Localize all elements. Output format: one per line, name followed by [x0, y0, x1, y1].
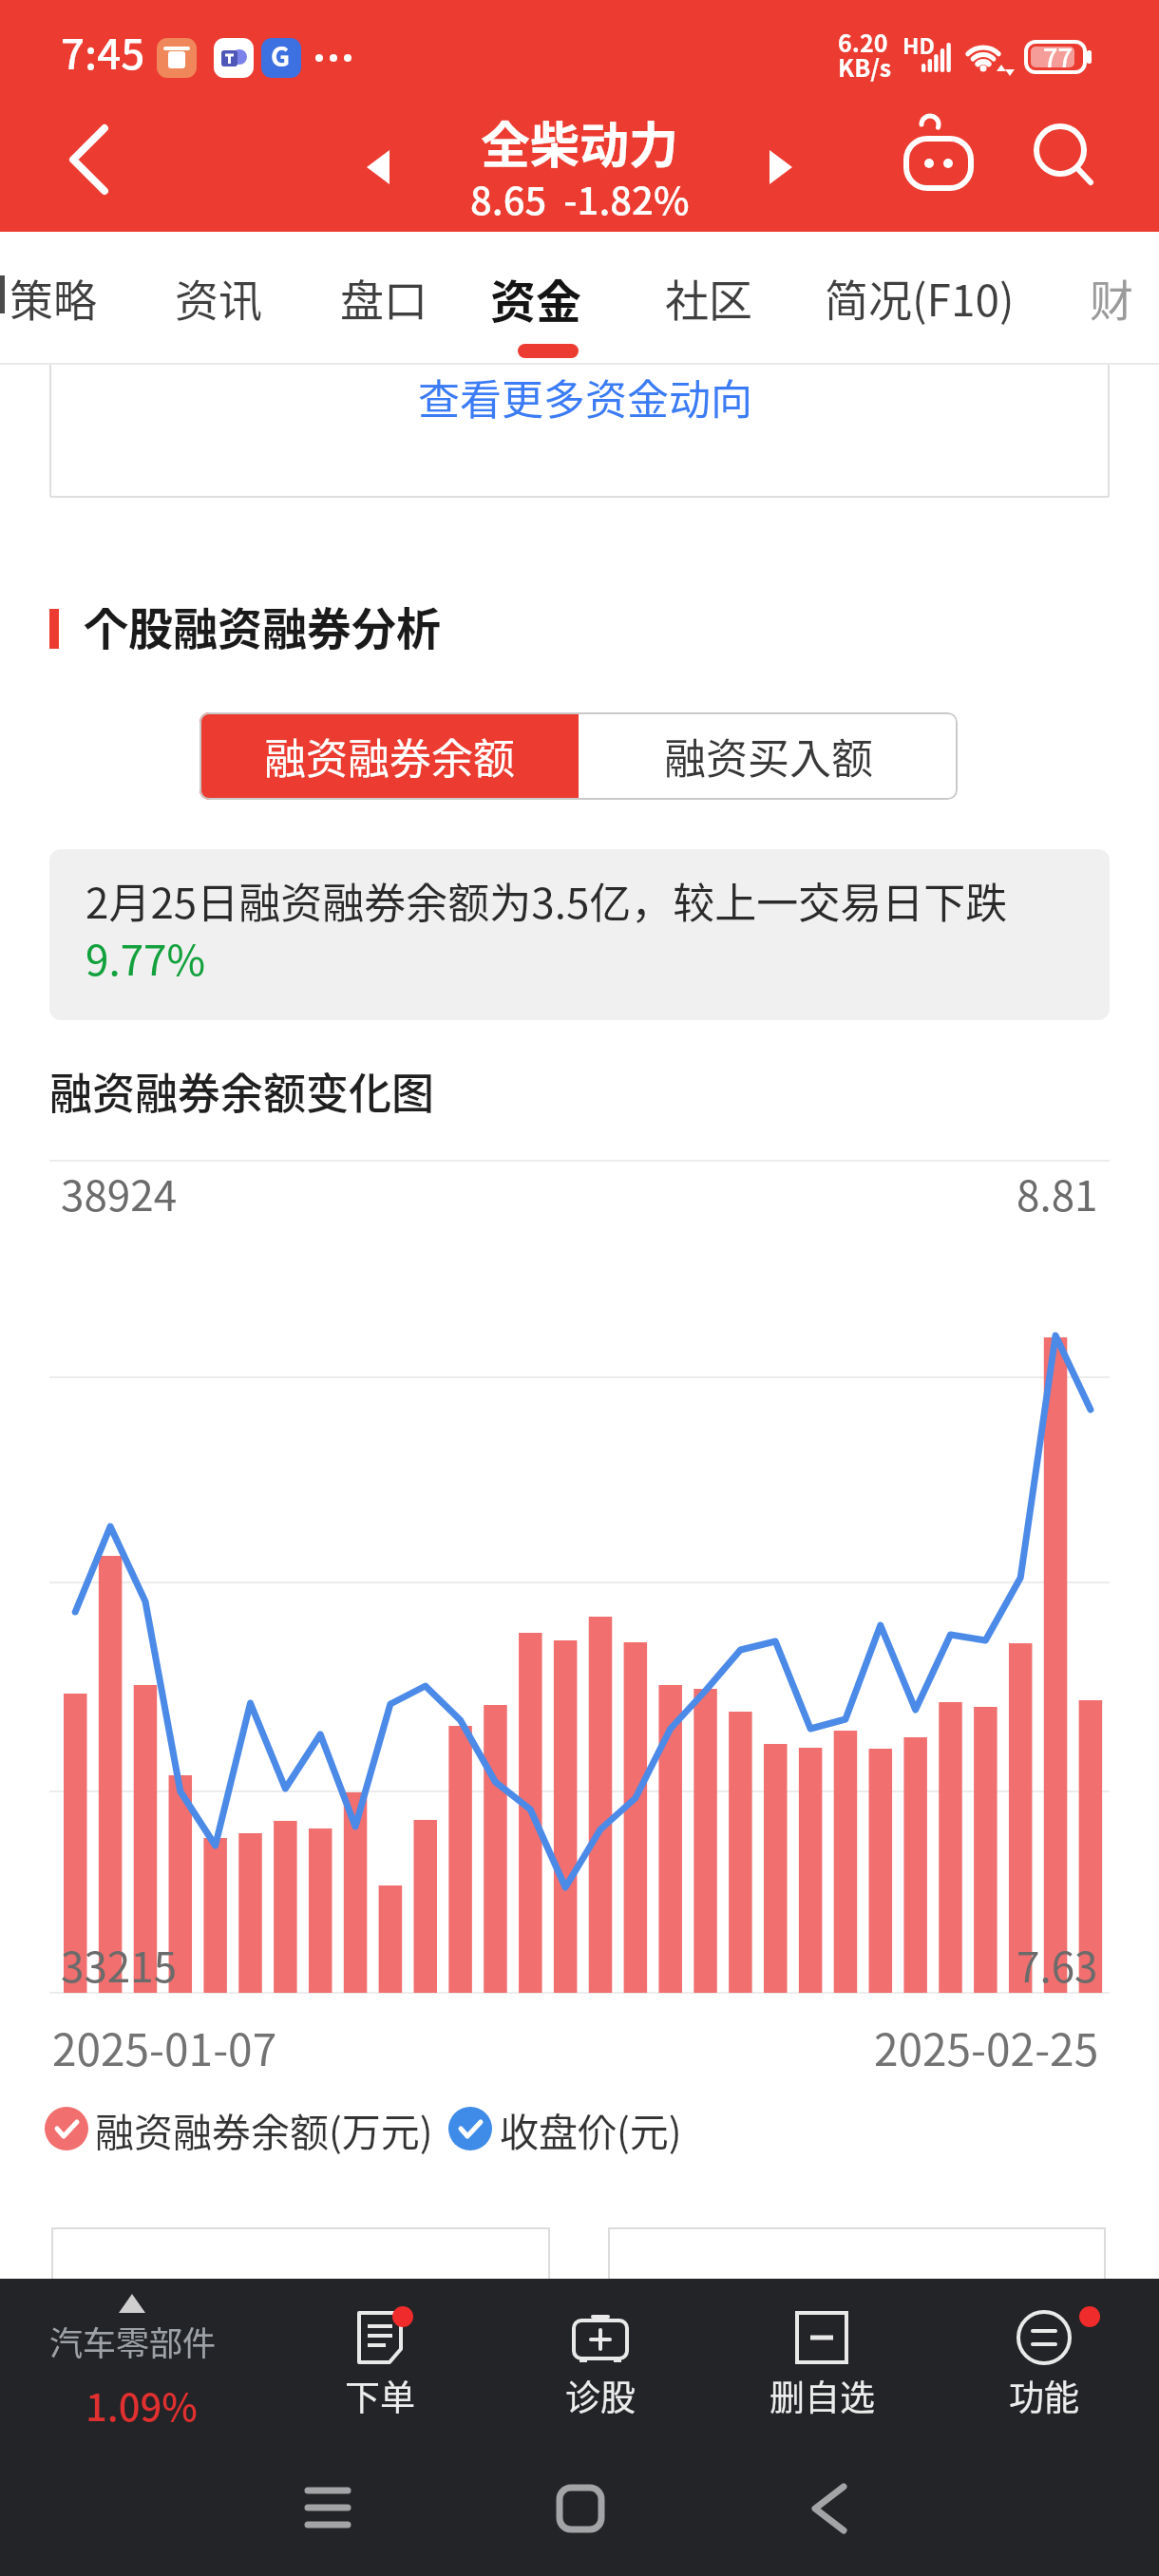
- staticText: 汽车零部件: [49, 2317, 217, 2365]
- button[interactable]: 删自选: [712, 2279, 932, 2453]
- button[interactable]: 资金: [484, 266, 614, 332]
- staticText: 全柴动力: [481, 106, 679, 178]
- staticText: 8.65 -1.82%: [470, 171, 690, 226]
- staticText: 查看更多资金动向: [418, 367, 752, 424]
- button[interactable]: 汽车零部件: [28, 2279, 237, 2453]
- staticText: 7.63: [1016, 1934, 1098, 1995]
- staticText: 策略: [9, 266, 97, 330]
- staticText: KB/s: [838, 49, 892, 84]
- staticText: 简况(F10): [825, 266, 1015, 330]
- staticText: 2月25日融资融券余额为3.5亿，较上一交易日下跌: [85, 870, 1008, 931]
- staticText: 盘口: [340, 266, 427, 330]
- button[interactable]: [38, 101, 142, 222]
- button[interactable]: [893, 114, 984, 209]
- button[interactable]: 融资买入额: [579, 712, 958, 800]
- button[interactable]: [1022, 114, 1117, 209]
- staticText: 收盘价(元): [500, 2101, 682, 2157]
- staticText: 资金: [490, 265, 582, 331]
- staticText: 1.09%: [85, 2377, 198, 2433]
- button[interactable]: 简况(F10): [821, 266, 1030, 332]
- button[interactable]: 社区: [661, 266, 756, 332]
- button[interactable]: [533, 2461, 628, 2556]
- staticText: 下单: [345, 2370, 415, 2421]
- button[interactable]: 功能: [934, 2279, 1154, 2453]
- staticText: 33215: [61, 1934, 178, 1995]
- button[interactable]: 查看更多资金动向: [408, 367, 750, 424]
- staticText: 社区: [665, 266, 752, 330]
- staticText: 诊股: [565, 2370, 636, 2421]
- button[interactable]: 盘口: [336, 266, 431, 332]
- button[interactable]: 下单: [270, 2279, 490, 2453]
- button[interactable]: [783, 2461, 878, 2556]
- staticText: 7:45: [61, 21, 145, 82]
- staticText: 融资融券余额(万元): [95, 2101, 433, 2157]
- staticText: 个股融资融券分析: [84, 593, 441, 657]
- button[interactable]: [279, 2461, 374, 2556]
- button[interactable]: 诊股: [490, 2279, 711, 2453]
- staticText: 38924: [61, 1163, 178, 1223]
- staticText: 融资融券余额: [264, 726, 515, 786]
- button[interactable]: 融资融券余额: [199, 712, 579, 800]
- staticText: 功能: [1009, 2370, 1079, 2421]
- staticText: 融资融券余额变化图: [49, 1060, 435, 1122]
- staticText: 财经: [1090, 266, 1159, 332]
- staticText: 6.20: [838, 25, 888, 59]
- staticText: 9.77%: [85, 927, 206, 988]
- staticText: G: [271, 38, 291, 75]
- staticText: 8.81: [1016, 1163, 1098, 1223]
- staticText: 删自选: [769, 2370, 875, 2421]
- button[interactable]: 资讯: [171, 266, 266, 332]
- staticText: 2025-01-07: [52, 2016, 277, 2079]
- staticText: 资讯: [175, 266, 262, 330]
- staticText: HD: [902, 28, 935, 60]
- button[interactable]: 策略: [0, 266, 104, 332]
- button[interactable]: 财经: [1087, 266, 1159, 332]
- staticText: 融资买入额: [664, 726, 873, 786]
- staticText: 2025-02-25: [874, 2016, 1099, 2079]
- staticText: 77: [1043, 38, 1073, 75]
